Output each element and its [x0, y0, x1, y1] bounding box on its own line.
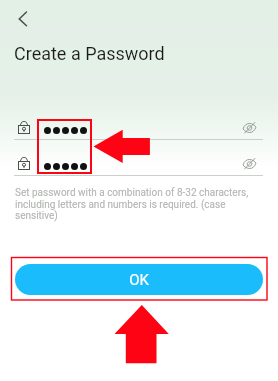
staticText: Create a Password: [14, 43, 165, 64]
button[interactable]: Back: [9, 6, 36, 33]
button[interactable]: OK: [15, 264, 263, 295]
staticText: Set password with a combination of 8-32 …: [15, 187, 260, 221]
button[interactable]: Show password: [243, 157, 256, 171]
button[interactable]: Show password: [243, 121, 256, 135]
staticText: OK: [129, 271, 149, 289]
